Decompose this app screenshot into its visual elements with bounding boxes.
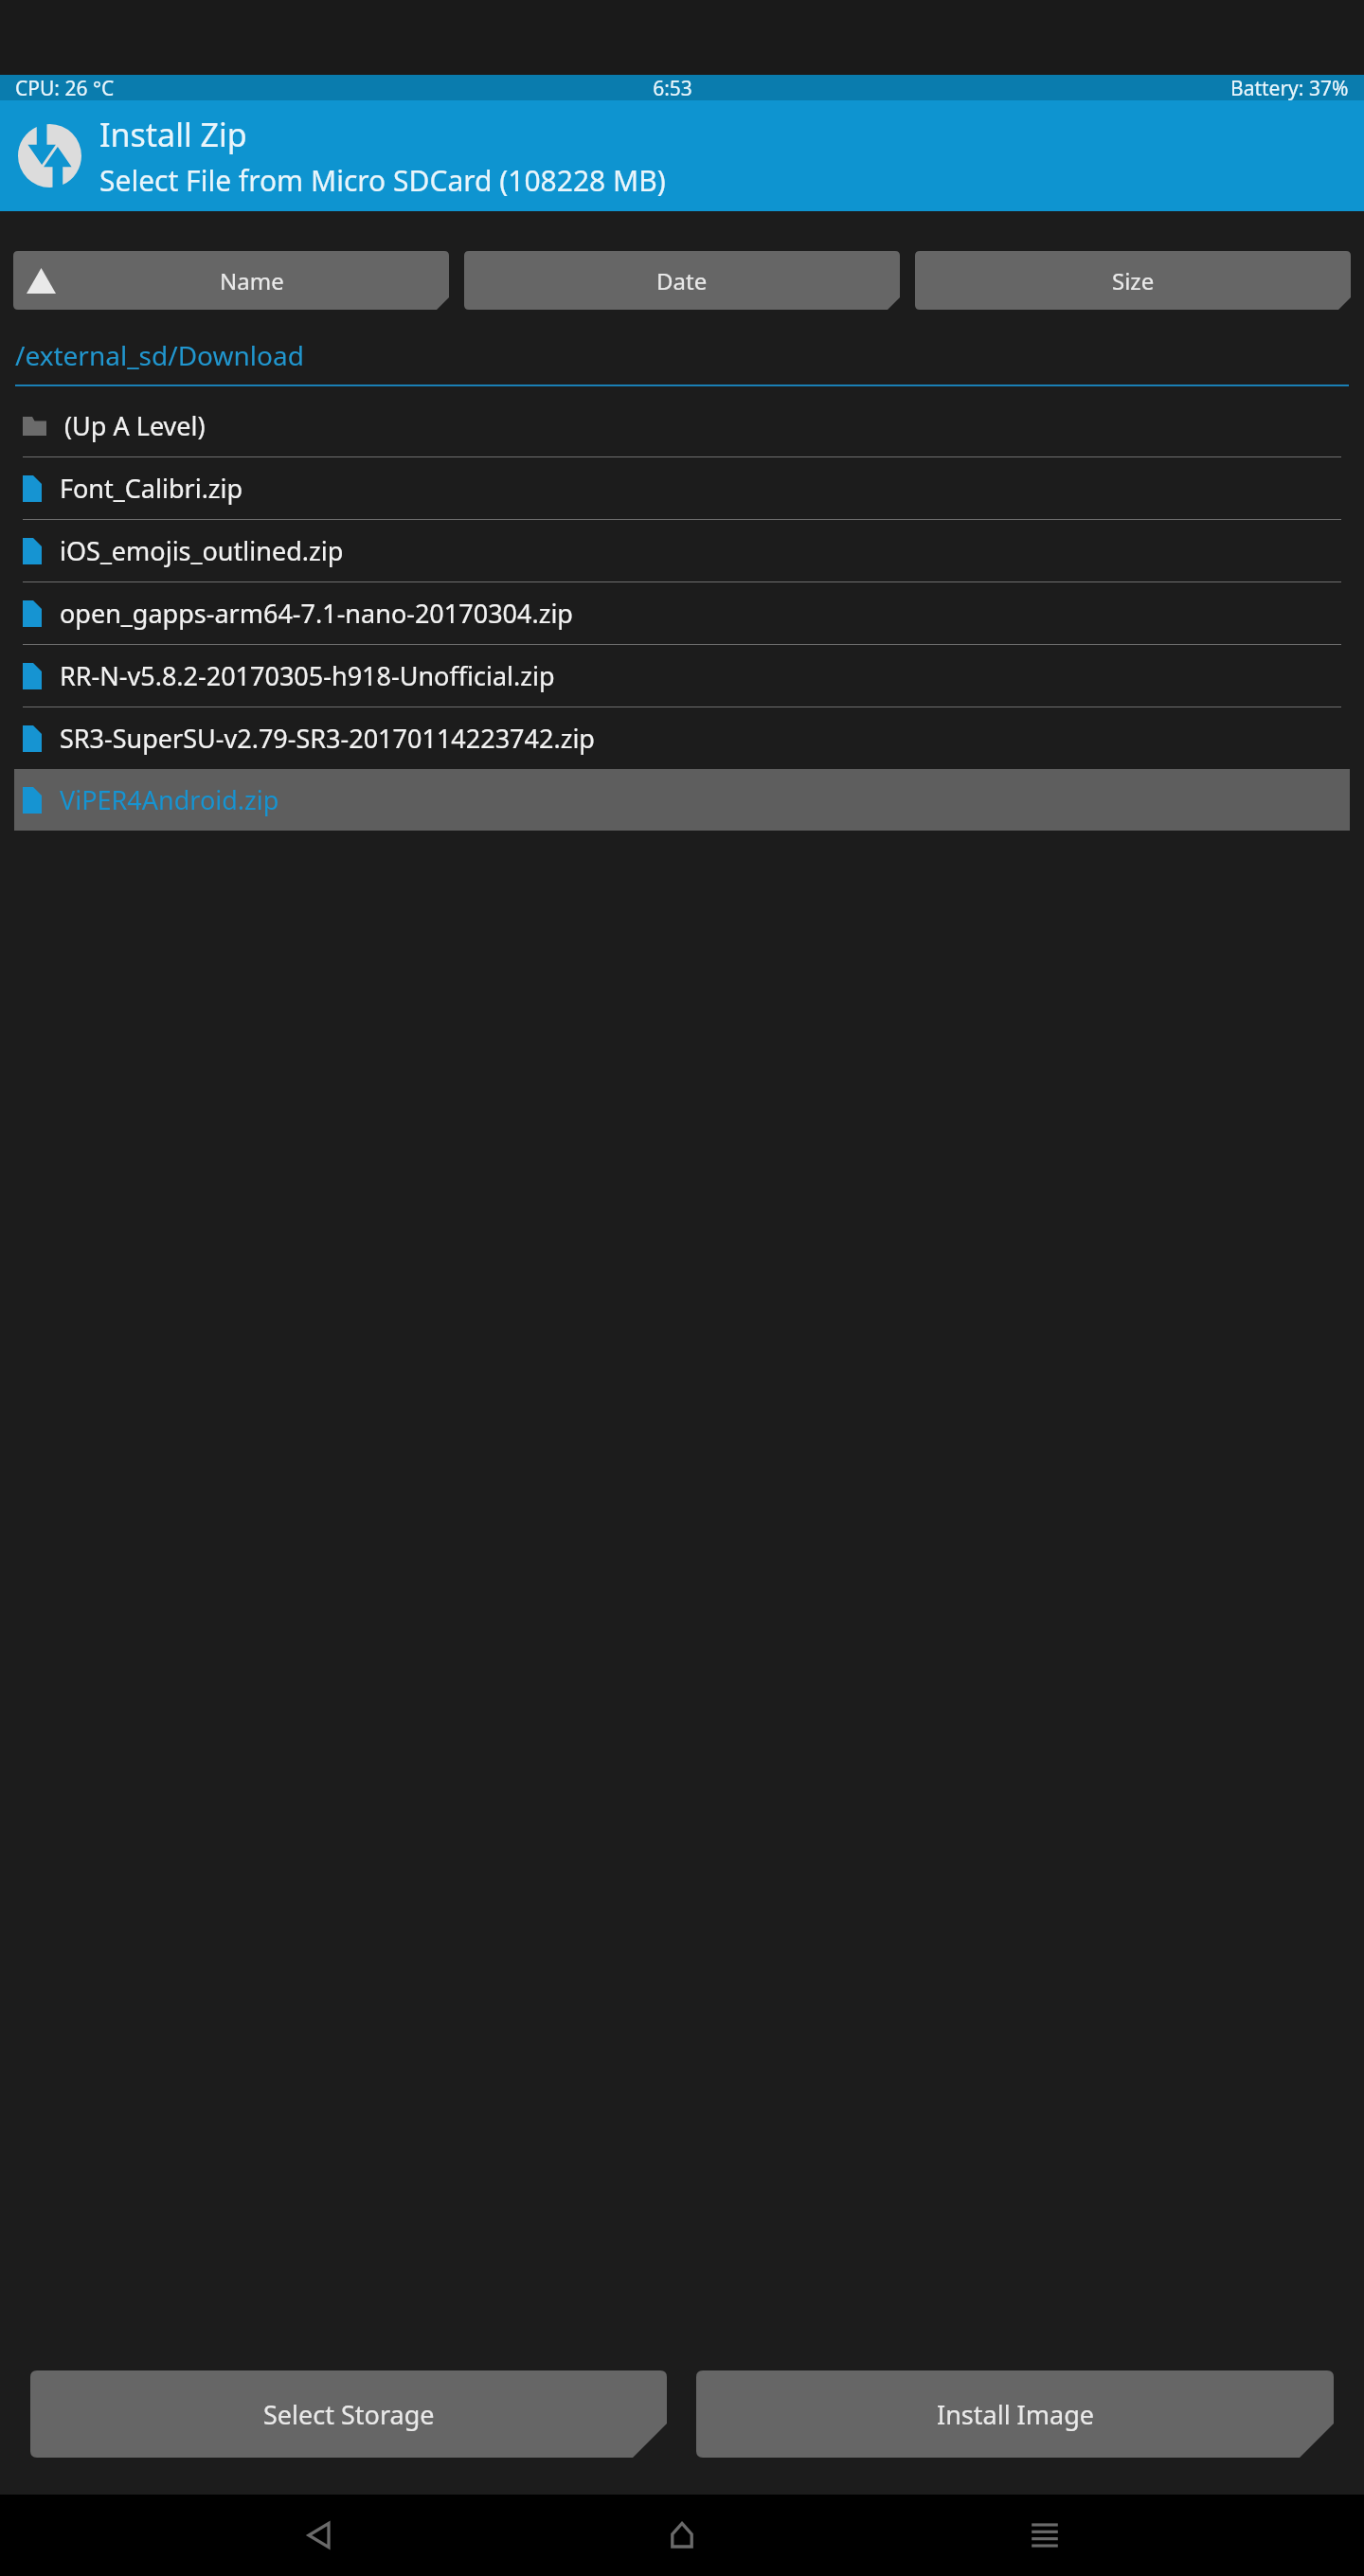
staticText: Name	[220, 265, 284, 296]
staticText: SR3-SuperSU-v2.79-SR3-20170114223742.zip	[60, 721, 595, 756]
staticText: Install Zip	[99, 113, 247, 156]
staticText: (Up A Level)	[64, 408, 206, 443]
staticText: Select Storage	[263, 2397, 435, 2432]
button[interactable]: open_gapps-arm64-7.1-nano-20170304.zip	[14, 582, 1350, 644]
button[interactable]: Date	[464, 251, 900, 310]
staticText: 6:53	[115, 75, 1230, 100]
button[interactable]: Install Image	[696, 2370, 1334, 2458]
staticText: iOS_emojis_outlined.zip	[60, 533, 344, 568]
button[interactable]: Back	[278, 2495, 363, 2576]
button[interactable]: Font_Calibri.zip	[14, 457, 1350, 519]
staticText: RR-N-v5.8.2-20170305-h918-Unofficial.zip	[60, 658, 555, 693]
staticText: ViPER4Android.zip	[60, 782, 279, 817]
button[interactable]: iOS_emojis_outlined.zip	[14, 520, 1350, 581]
button[interactable]: ViPER4Android.zip	[14, 769, 1350, 831]
staticText: Date	[656, 265, 708, 296]
button[interactable]: Size	[915, 251, 1351, 310]
button[interactable]: Home	[639, 2495, 725, 2576]
button[interactable]: (Up A Level)	[14, 395, 1350, 456]
staticText: Font_Calibri.zip	[60, 471, 243, 506]
button[interactable]: Menu	[1002, 2495, 1087, 2576]
button[interactable]: RR-N-v5.8.2-20170305-h918-Unofficial.zip	[14, 645, 1350, 707]
staticText: Size	[1112, 265, 1155, 296]
button[interactable]: SR3-SuperSU-v2.79-SR3-20170114223742.zip	[14, 707, 1350, 769]
staticText: Install Image	[937, 2397, 1094, 2432]
staticText: CPU: 26 °C	[15, 75, 115, 100]
staticText: open_gapps-arm64-7.1-nano-20170304.zip	[60, 596, 573, 631]
staticText: /external_sd/Download	[15, 337, 304, 373]
staticText: Battery: 37%	[1230, 75, 1349, 100]
staticText: Select File from Micro SDCard (108228 MB…	[99, 161, 666, 200]
button[interactable]: Select Storage	[30, 2370, 667, 2458]
button[interactable]: Name	[13, 251, 449, 310]
